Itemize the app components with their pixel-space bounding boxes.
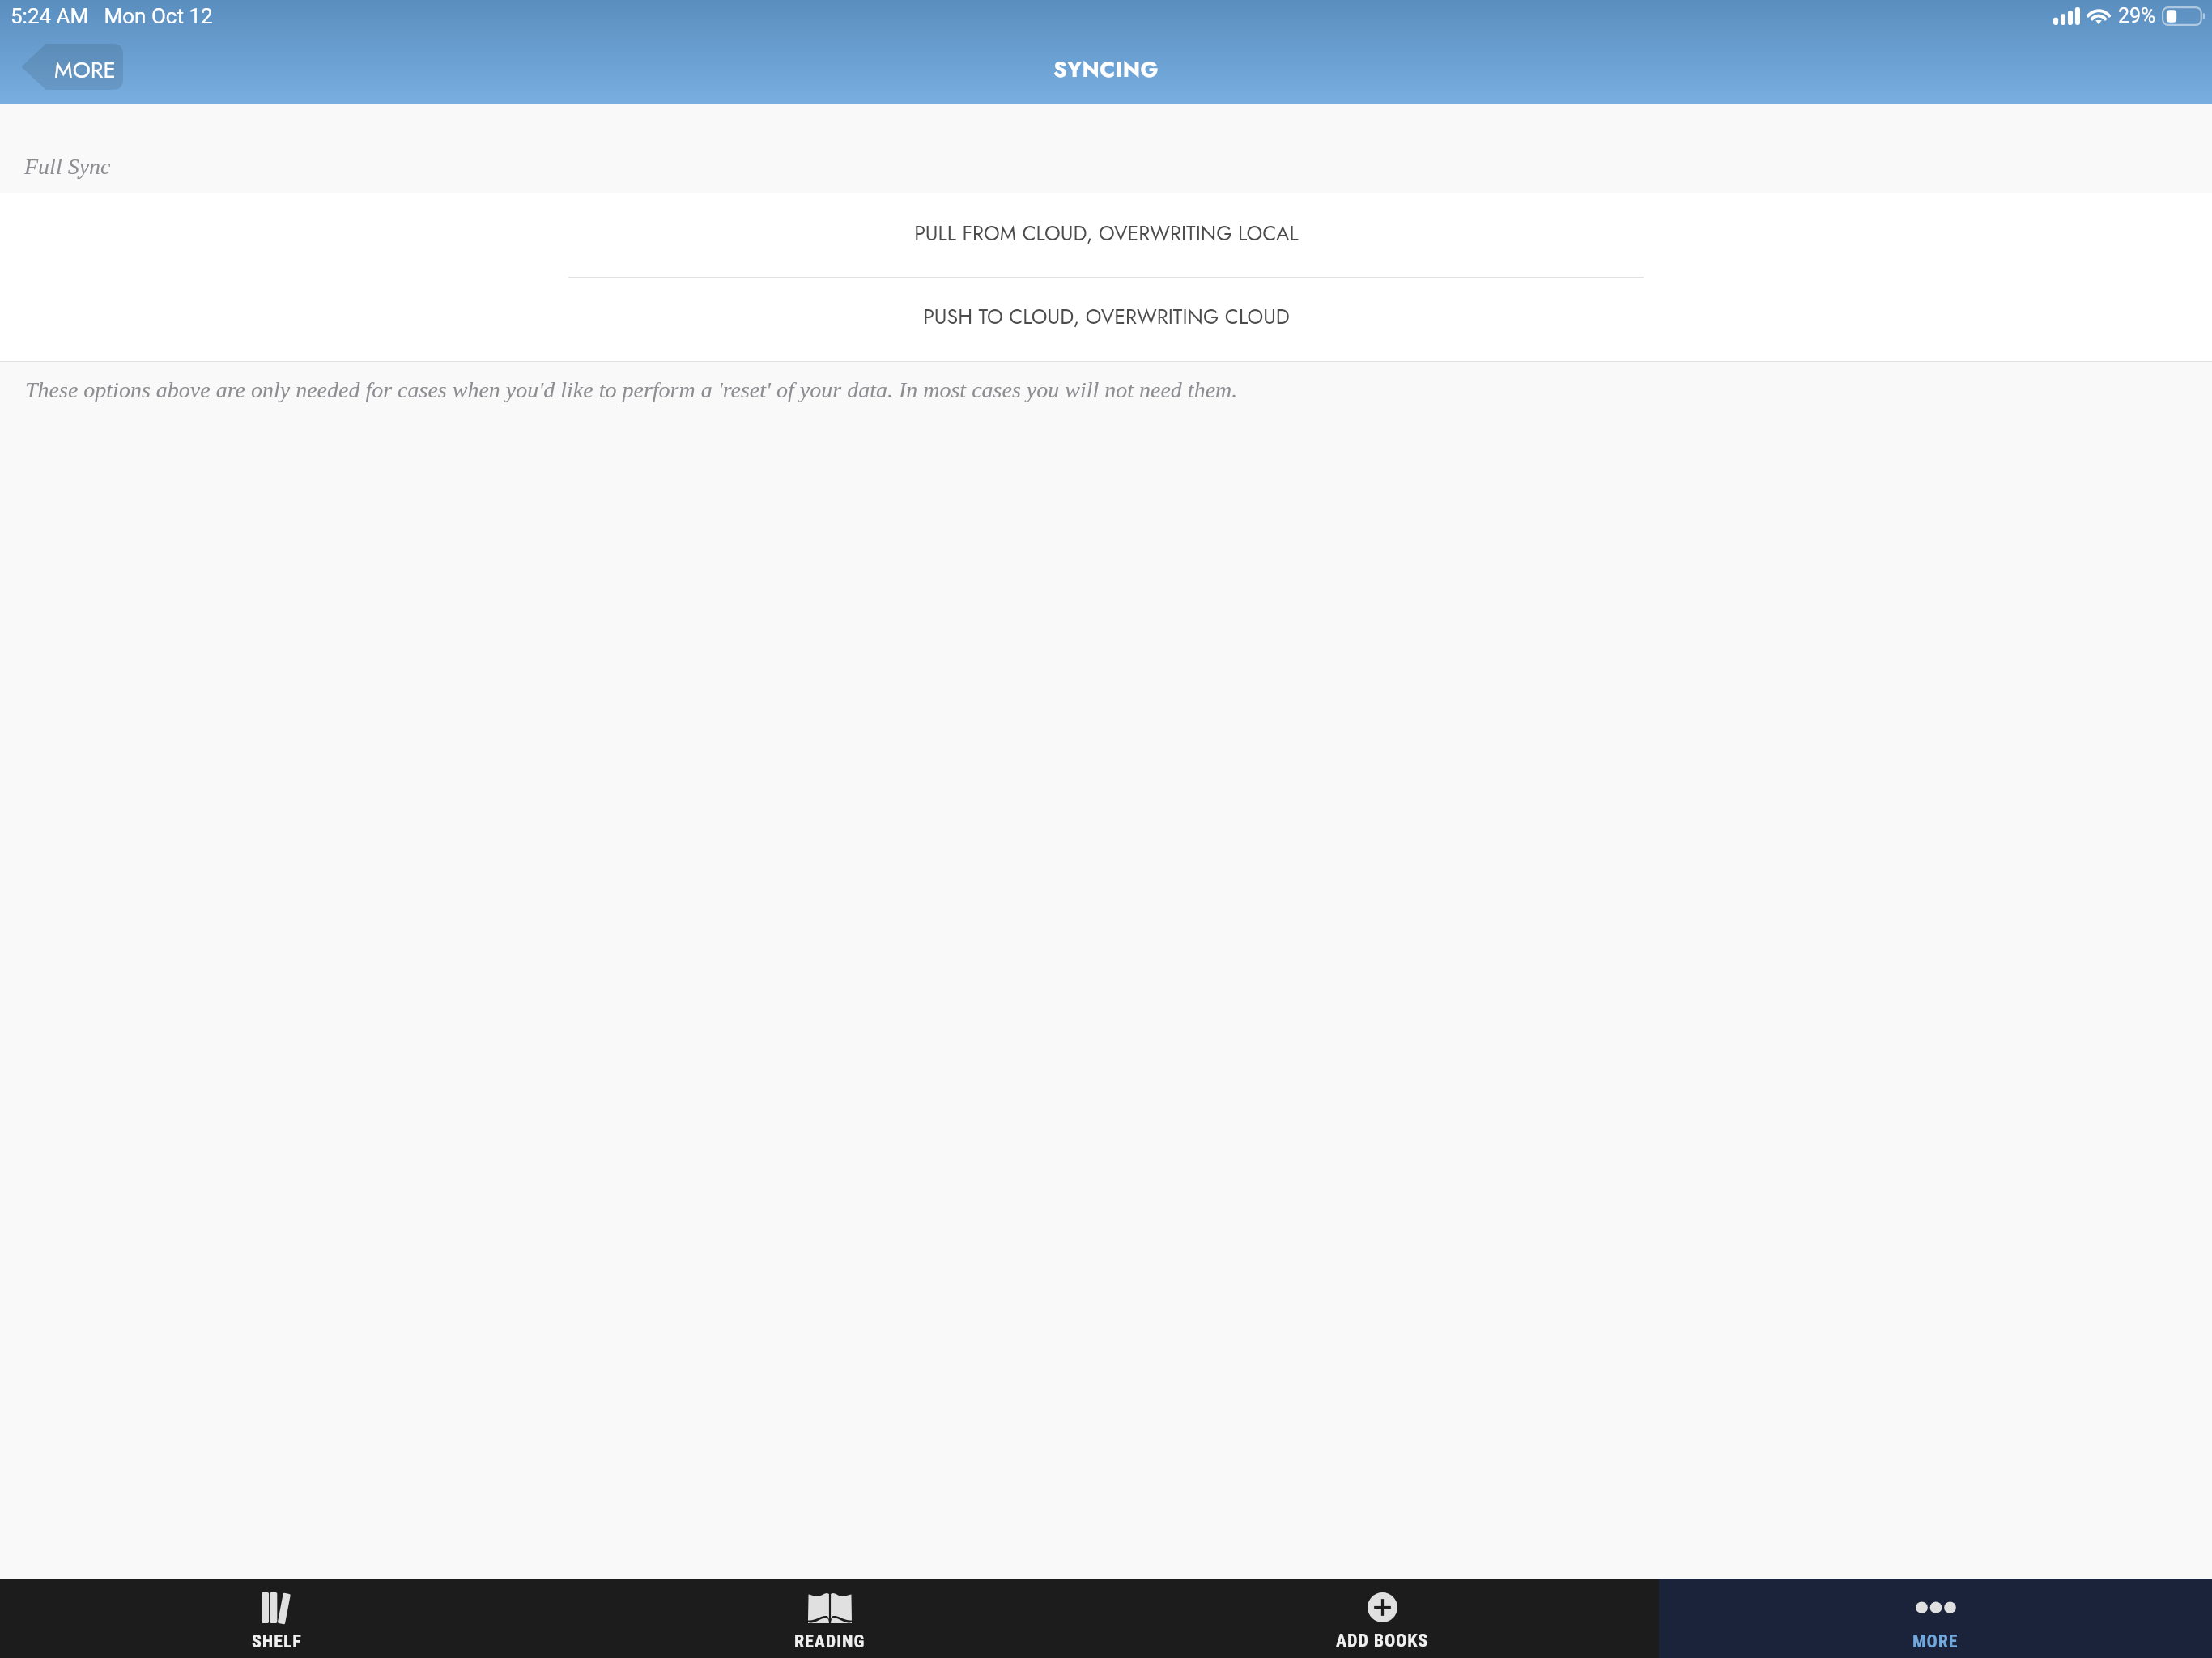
- staticText: These options above are only needed for …: [25, 377, 1238, 402]
- button[interactable]: SHELF: [0, 1579, 553, 1658]
- staticText: ADD BOOKS: [1336, 1630, 1429, 1652]
- staticText: Full Sync: [24, 154, 111, 179]
- button[interactable]: READING: [553, 1579, 1106, 1658]
- staticText: MORE: [1912, 1631, 1959, 1652]
- staticText: 29%: [2118, 4, 2156, 28]
- staticText: 5:24 AM Mon Oct 12: [11, 4, 213, 28]
- button[interactable]: Back to More: [19, 44, 123, 90]
- staticText: SYNCING: [1053, 53, 1159, 85]
- staticText: PUSH TO CLOUD, OVERWRITING CLOUD: [923, 302, 1290, 331]
- staticText: READING: [794, 1631, 866, 1652]
- staticText: SHELF: [252, 1631, 302, 1652]
- staticText: MORE: [54, 53, 116, 86]
- staticText: PULL FROM CLOUD, OVERWRITING LOCAL: [914, 219, 1299, 248]
- button[interactable]: ADD BOOKS: [1106, 1579, 1659, 1658]
- button[interactable]: PULL FROM CLOUD, OVERWRITING LOCAL: [0, 193, 2212, 277]
- button[interactable]: MORE: [1659, 1579, 2212, 1658]
- button[interactable]: PUSH TO CLOUD, OVERWRITING CLOUD: [0, 277, 2212, 361]
